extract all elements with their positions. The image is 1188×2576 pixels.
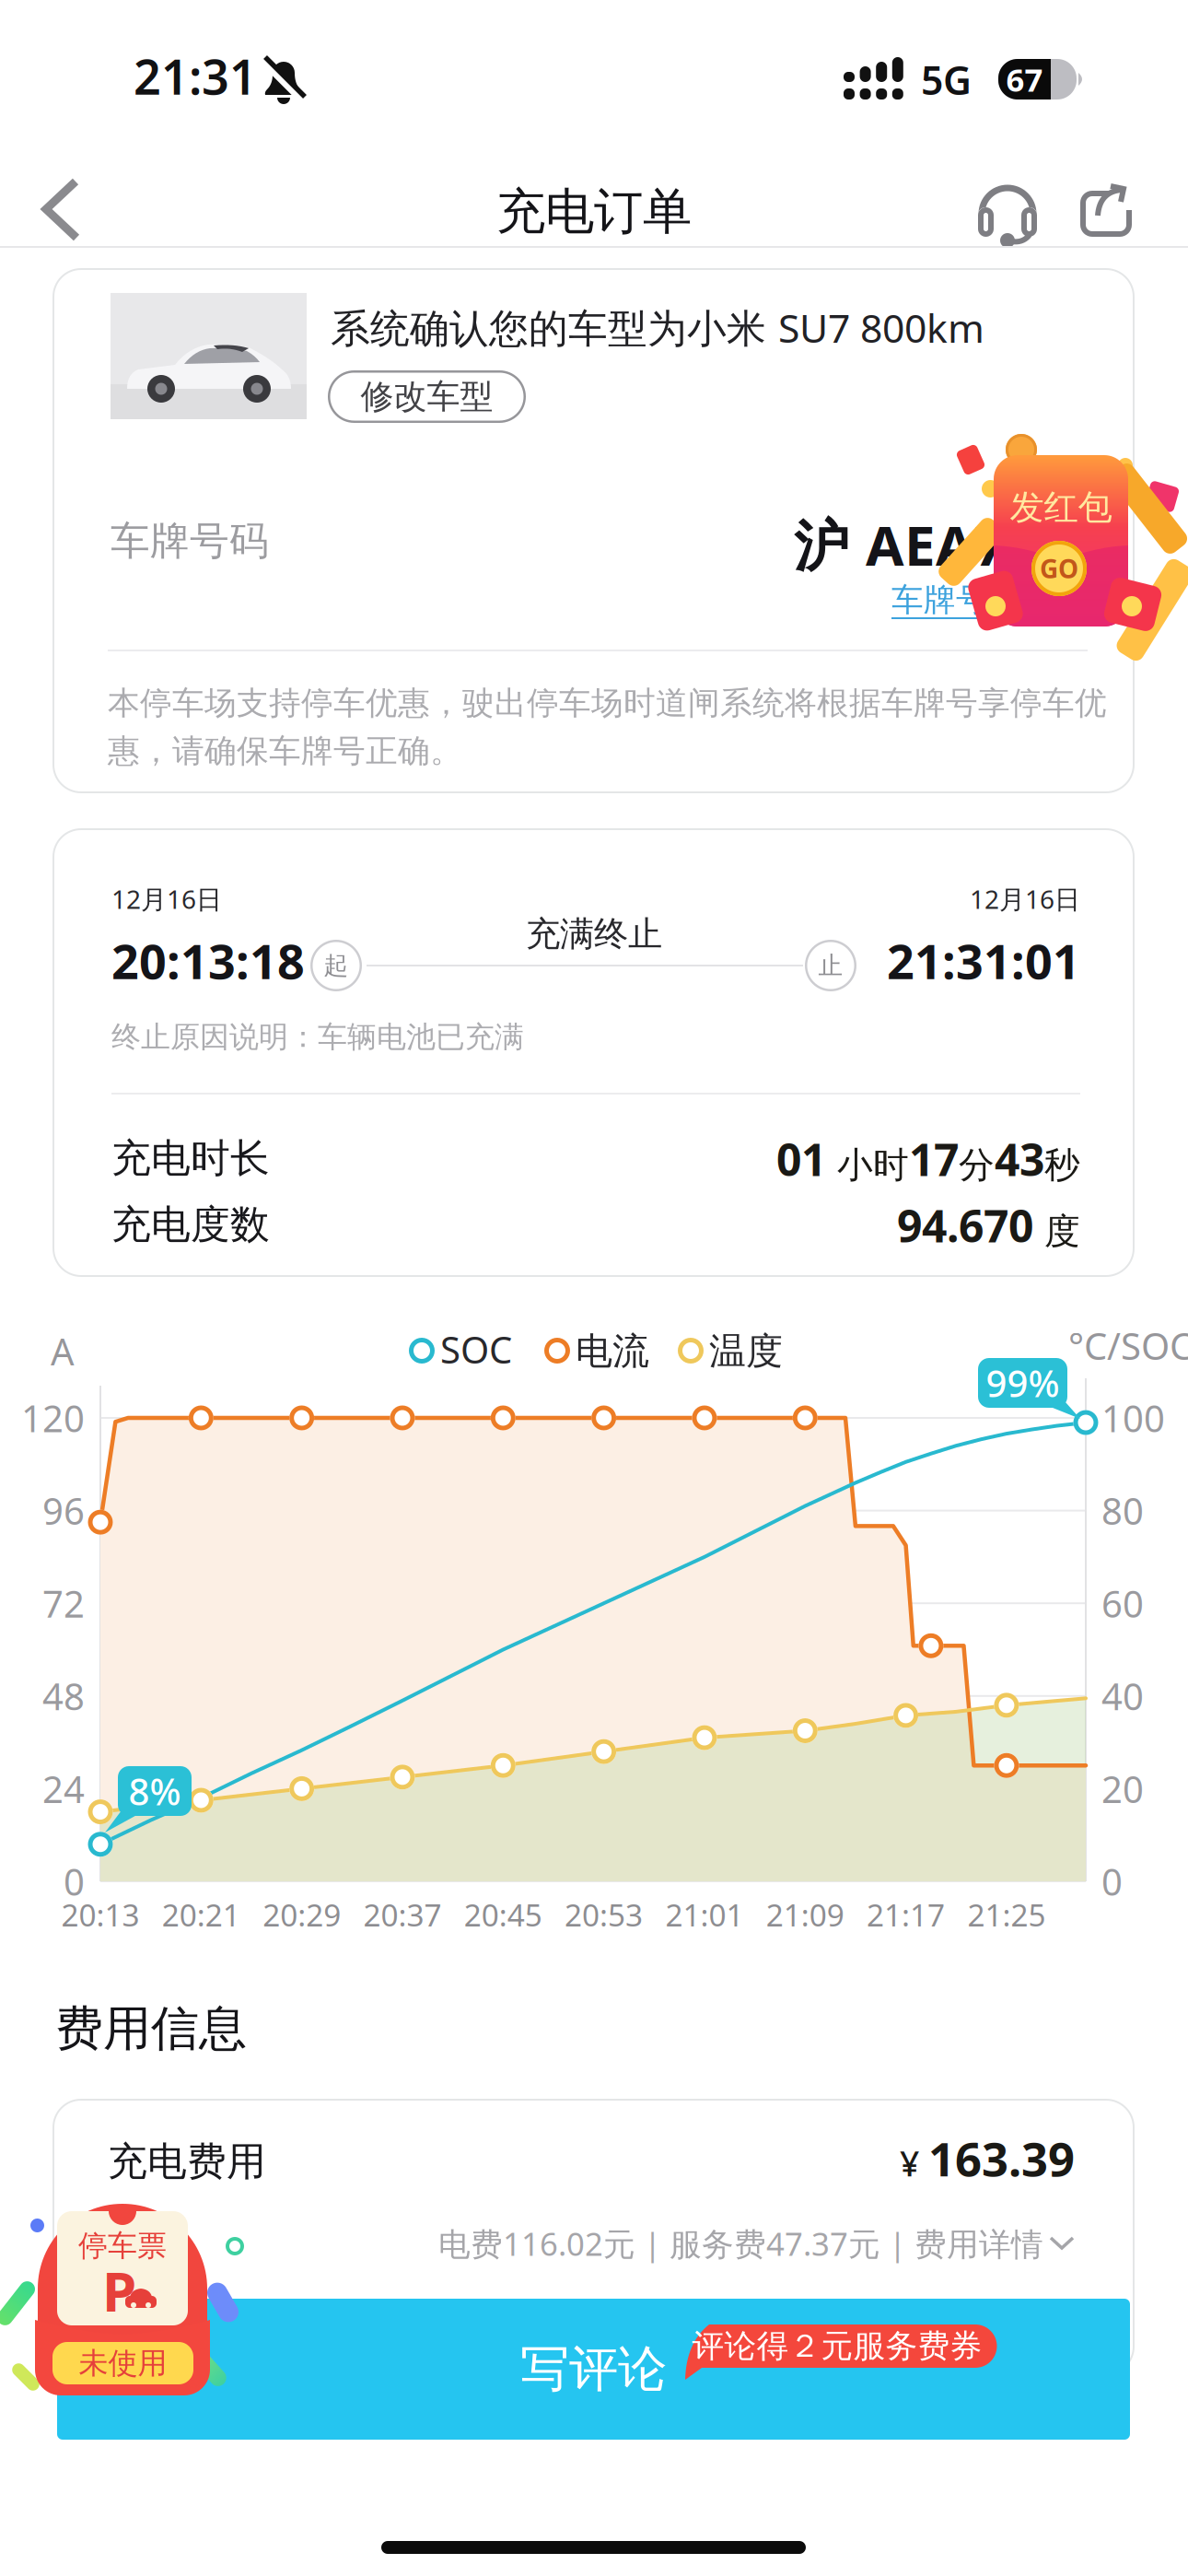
staticText: 沪 AEA7 <box>794 508 1006 581</box>
button[interactable]: 发红包 <box>921 419 1188 659</box>
staticText: 80 <box>1101 1486 1144 1535</box>
staticText: 充电费用 <box>108 2137 266 2186</box>
staticText: 12月16日 <box>970 882 1080 916</box>
staticText: 费用信息 <box>55 1999 247 2058</box>
staticText: 40 <box>1101 1671 1144 1720</box>
staticText: 96 <box>42 1486 85 1535</box>
staticText: 20:45 <box>464 1894 542 1935</box>
button[interactable] <box>45 173 86 245</box>
staticText: 0 <box>64 1857 85 1906</box>
staticText: 20:13 <box>61 1894 140 1935</box>
staticText: 车牌号 <box>891 580 988 620</box>
staticText: 21:25 <box>967 1894 1046 1935</box>
staticText: 5G <box>921 53 972 106</box>
button[interactable]: 停车票 <box>30 2204 244 2401</box>
staticText: 67 <box>1006 58 1043 100</box>
button[interactable] <box>1081 182 1131 236</box>
staticText: 评论得２元服务费券 <box>692 2327 982 2366</box>
staticText: 停车票 <box>78 2228 167 2264</box>
staticText: 系统确认您的车型为小米 SU7 800km <box>331 301 984 354</box>
staticText: 120 <box>21 1393 85 1442</box>
staticText: 修改车型 <box>361 376 493 417</box>
staticText: 充电时长 <box>111 1134 270 1182</box>
staticText: 94.670 度 <box>897 1196 1080 1255</box>
staticText: 20:29 <box>263 1894 341 1935</box>
staticText: 发红包 <box>1010 486 1112 529</box>
staticText: 20:13:18 <box>111 929 305 992</box>
button[interactable]: 修改车型 <box>328 370 526 423</box>
staticText: 48 <box>42 1671 85 1720</box>
staticText: 21:17 <box>867 1894 945 1935</box>
staticText: SOC <box>440 1325 512 1374</box>
staticText: 车牌号码 <box>111 517 269 565</box>
staticText: 20 <box>1101 1764 1144 1813</box>
staticText: 20:21 <box>162 1894 240 1935</box>
staticText: 24 <box>42 1764 85 1813</box>
staticText: 21:09 <box>766 1894 844 1935</box>
staticText: P <box>102 2254 136 2327</box>
staticText: 充满终止 <box>526 913 662 955</box>
staticText: 本停车场支持停车优惠，驶出停车场时道闸系统将根据车牌号享停车优 <box>108 684 1107 723</box>
button[interactable]: 电费116.02元 | 服务费47.37元 | 费用详情 <box>108 2222 1075 2265</box>
staticText: 未使用 <box>79 2345 167 2381</box>
staticText: 20:53 <box>565 1894 643 1935</box>
staticText: 写评论 <box>520 2339 667 2399</box>
button[interactable] <box>978 181 1037 249</box>
staticText: 21:31 <box>134 44 257 108</box>
staticText: 01 小时17分43秒 <box>776 1130 1080 1188</box>
staticText: 充电度数 <box>111 1200 270 1249</box>
staticText: 惠，请确保车牌号正确。 <box>108 732 462 771</box>
button[interactable]: 写评论 <box>57 2299 1130 2440</box>
staticText: 100 <box>1101 1393 1165 1442</box>
staticText: 温度 <box>709 1329 783 1374</box>
staticText: 72 <box>42 1579 85 1628</box>
staticText: 21:31:01 <box>887 929 1080 992</box>
staticText: 8% <box>128 1767 181 1815</box>
staticText: 21:01 <box>665 1894 744 1935</box>
staticText: °C/SOC <box>1068 1321 1188 1370</box>
staticText: 止 <box>818 950 843 981</box>
staticText: 99% <box>986 1358 1060 1407</box>
staticText: 电费116.02元 | 服务费47.37元 | 费用详情 <box>438 2222 1043 2265</box>
staticText: ¥ 163.39 <box>900 2127 1075 2189</box>
staticText: 0 <box>1101 1857 1123 1906</box>
staticText: 电流 <box>576 1329 649 1374</box>
staticText: GO <box>1040 551 1078 586</box>
staticText: 20:37 <box>363 1894 442 1935</box>
staticText: 起 <box>324 950 349 981</box>
staticText: 终止原因说明：车辆电池已充满 <box>111 1019 524 1055</box>
staticText: A <box>51 1327 75 1376</box>
staticText: 充电订单 <box>496 181 692 242</box>
staticText: 60 <box>1101 1579 1144 1628</box>
staticText: 12月16日 <box>111 882 222 916</box>
button[interactable]: 车牌号 <box>891 580 1011 621</box>
